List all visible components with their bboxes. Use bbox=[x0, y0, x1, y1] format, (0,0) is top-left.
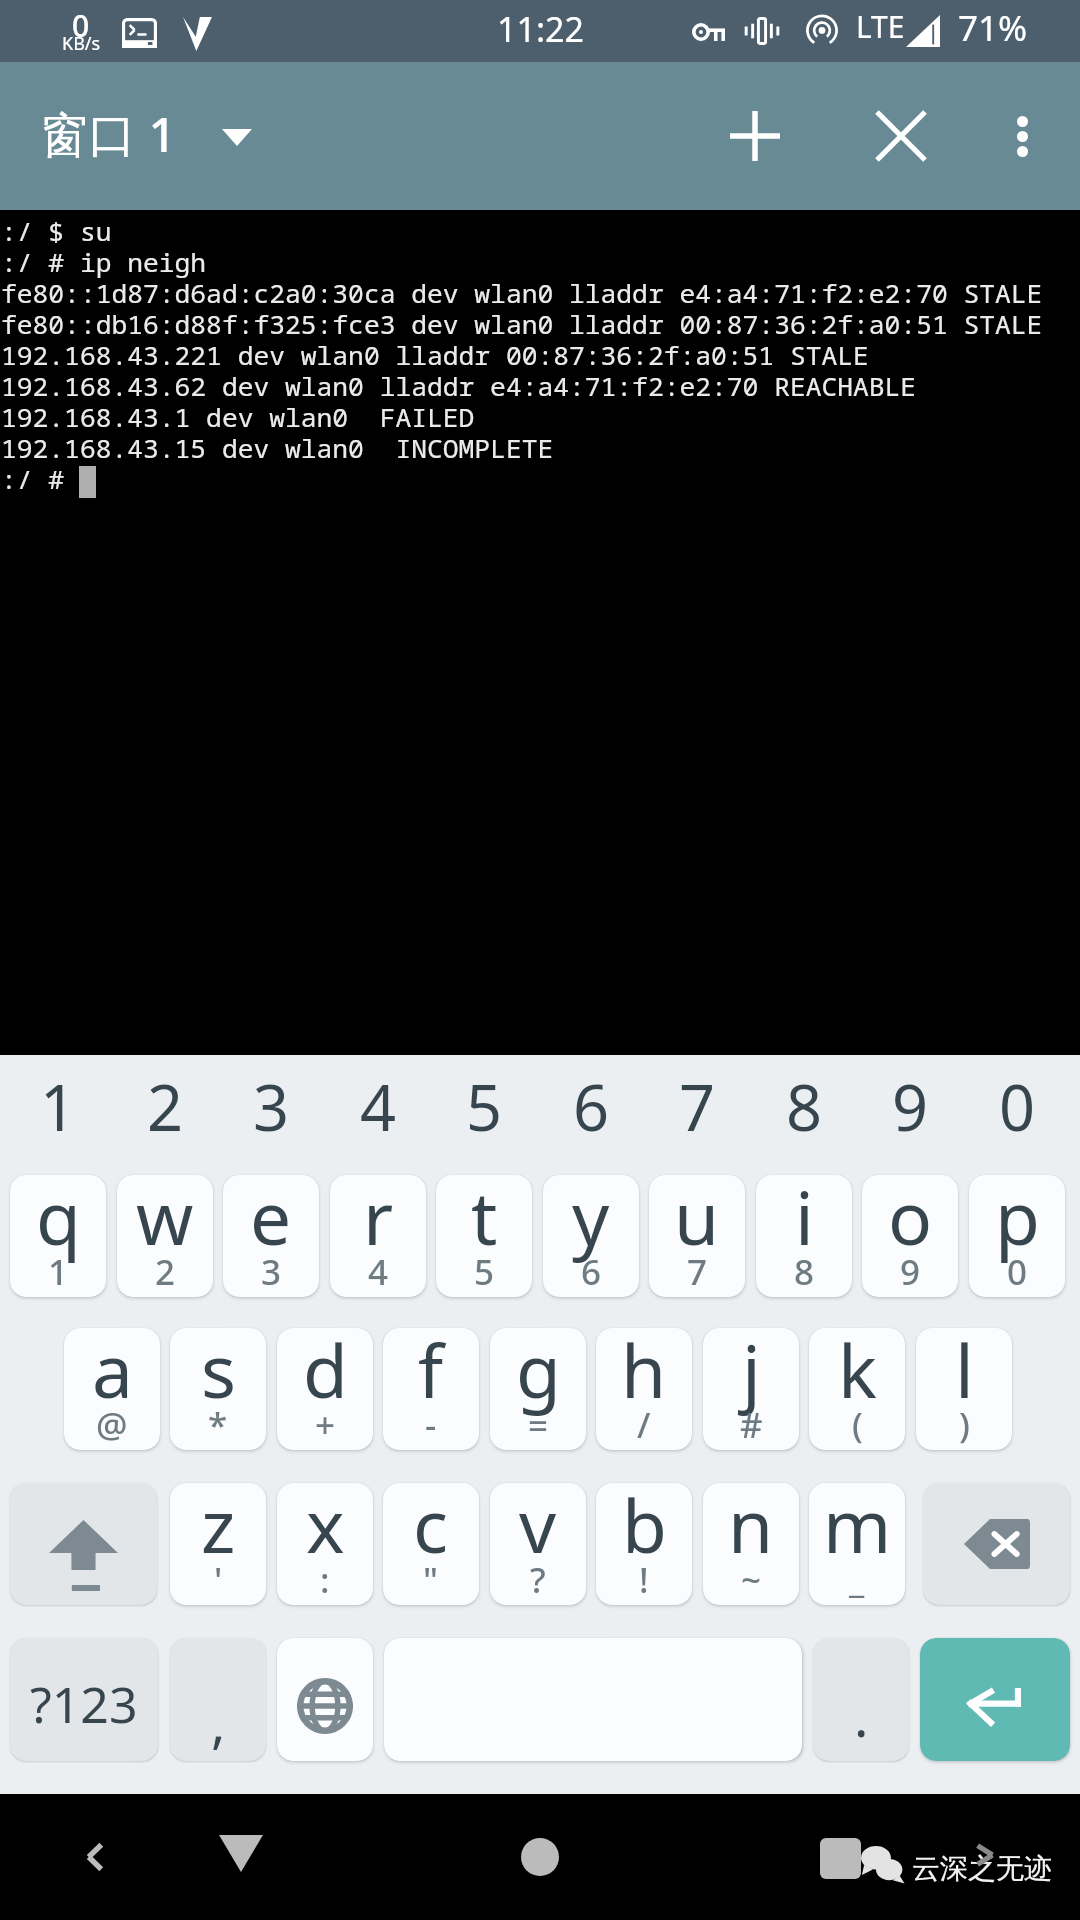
button[interactable]: f bbox=[383, 1328, 479, 1450]
button[interactable]: Close window bbox=[838, 76, 964, 196]
staticText: b bbox=[622, 1483, 667, 1574]
staticText: 0 bbox=[72, 5, 90, 46]
button[interactable]: m bbox=[809, 1483, 905, 1605]
staticText: fe80::1d87:d6ad:c2a0:30ca dev wlan0 llad… bbox=[1, 275, 1043, 311]
button[interactable]: 6 bbox=[543, 1055, 639, 1175]
staticText: r bbox=[363, 1175, 394, 1266]
staticText: - bbox=[425, 1401, 437, 1449]
button[interactable]: , bbox=[170, 1638, 266, 1761]
staticText: h bbox=[621, 1328, 667, 1419]
button[interactable]: 8 bbox=[756, 1055, 852, 1175]
button[interactable]: 3 bbox=[223, 1055, 319, 1175]
staticText: fe80::db16:d88f:f325:fce3 dev wlan0 llad… bbox=[1, 306, 1043, 342]
button[interactable]: z bbox=[170, 1483, 266, 1605]
button[interactable]: j bbox=[703, 1328, 799, 1450]
button[interactable]: . bbox=[813, 1638, 909, 1761]
button[interactable]: p bbox=[969, 1175, 1065, 1297]
staticText: 8 bbox=[794, 1248, 815, 1296]
staticText: = bbox=[528, 1401, 549, 1449]
button[interactable]: h bbox=[596, 1328, 692, 1450]
staticText: :/ # ip neigh bbox=[1, 244, 207, 280]
button[interactable]: 4 bbox=[330, 1055, 426, 1175]
button[interactable]: b bbox=[596, 1483, 692, 1605]
staticText: 192.168.43.62 dev wlan0 lladdr e4:a4:71:… bbox=[1, 368, 917, 404]
button[interactable]: 2 bbox=[117, 1055, 213, 1175]
staticText: 窗口 1 bbox=[40, 101, 176, 167]
button[interactable]: g bbox=[490, 1328, 586, 1450]
button[interactable]: y bbox=[543, 1175, 639, 1297]
staticText: ( bbox=[852, 1401, 863, 1449]
staticText: d bbox=[303, 1328, 348, 1419]
staticText: f bbox=[418, 1328, 444, 1419]
staticText: : bbox=[320, 1556, 330, 1604]
staticText: 192.168.43.15 dev wlan0 INCOMPLETE bbox=[1, 430, 554, 466]
staticText: y bbox=[572, 1175, 610, 1266]
button[interactable]: 5 bbox=[436, 1055, 532, 1175]
staticText: l bbox=[955, 1328, 974, 1419]
button[interactable]: x bbox=[277, 1483, 373, 1605]
staticText: . bbox=[854, 1679, 869, 1753]
button[interactable]: Shift bbox=[10, 1483, 157, 1605]
staticText: w bbox=[136, 1175, 194, 1266]
button[interactable]: a bbox=[64, 1328, 160, 1450]
button[interactable]: r bbox=[330, 1175, 426, 1297]
button[interactable]: Recents bbox=[775, 1794, 905, 1920]
button[interactable]: Hide keyboard bbox=[176, 1794, 306, 1920]
staticText: 7 bbox=[687, 1248, 708, 1296]
staticText: 8 bbox=[786, 1064, 823, 1150]
staticText: 6 bbox=[581, 1248, 602, 1296]
staticText: 4 bbox=[368, 1248, 389, 1296]
button[interactable]: 0 bbox=[969, 1055, 1065, 1175]
staticText: + bbox=[315, 1401, 336, 1449]
staticText: 9 bbox=[892, 1064, 929, 1150]
button[interactable]: d bbox=[277, 1328, 373, 1450]
staticText: o bbox=[888, 1175, 933, 1266]
staticText: 2 bbox=[155, 1248, 176, 1296]
staticText: 192.168.43.1 dev wlan0 FAILED bbox=[1, 399, 475, 435]
button[interactable]: Enter bbox=[920, 1638, 1070, 1761]
button[interactable]: l bbox=[916, 1328, 1012, 1450]
staticText: c bbox=[413, 1483, 449, 1574]
button[interactable]: w bbox=[117, 1175, 213, 1297]
button[interactable]: Change language bbox=[277, 1638, 373, 1761]
staticText: LTE bbox=[856, 6, 905, 47]
button[interactable]: Back bbox=[30, 1794, 160, 1920]
button[interactable]: 窗口 1 bbox=[0, 79, 280, 193]
button[interactable]: c bbox=[383, 1483, 479, 1605]
staticText: j bbox=[742, 1328, 761, 1419]
staticText: z bbox=[201, 1483, 236, 1574]
button[interactable]: k bbox=[809, 1328, 905, 1450]
button[interactable]: t bbox=[436, 1175, 532, 1297]
staticText: ! bbox=[639, 1556, 649, 1604]
button[interactable]: s bbox=[170, 1328, 266, 1450]
staticText: 3 bbox=[253, 1064, 290, 1150]
button[interactable]: Home bbox=[475, 1794, 605, 1920]
staticText: :/ $ su bbox=[1, 213, 112, 249]
staticText: " bbox=[423, 1556, 439, 1604]
button[interactable]: New window bbox=[672, 76, 838, 196]
staticText: n bbox=[728, 1483, 774, 1574]
button[interactable]: u bbox=[649, 1175, 745, 1297]
staticText: i bbox=[795, 1175, 814, 1266]
button[interactable]: n bbox=[703, 1483, 799, 1605]
staticText: ? bbox=[530, 1556, 546, 1604]
staticText: 0 bbox=[1007, 1248, 1028, 1296]
staticText: q bbox=[36, 1175, 81, 1266]
staticText: m bbox=[823, 1483, 892, 1574]
button[interactable]: 1 bbox=[10, 1055, 106, 1175]
button[interactable]: Delete bbox=[923, 1483, 1070, 1605]
button[interactable]: i bbox=[756, 1175, 852, 1297]
button[interactable]: 9 bbox=[862, 1055, 958, 1175]
button[interactable]: v bbox=[490, 1483, 586, 1605]
staticText: v bbox=[519, 1483, 557, 1574]
staticText: KB/s bbox=[62, 31, 101, 56]
button[interactable]: ?123 bbox=[10, 1638, 158, 1761]
button[interactable]: o bbox=[862, 1175, 958, 1297]
button[interactable]: q bbox=[10, 1175, 106, 1297]
staticText: 192.168.43.221 dev wlan0 lladdr 00:87:36… bbox=[1, 337, 869, 373]
button[interactable]: 7 bbox=[649, 1055, 745, 1175]
staticText: ?123 bbox=[30, 1670, 138, 1738]
button[interactable]: e bbox=[223, 1175, 319, 1297]
button[interactable]: More options bbox=[964, 76, 1080, 196]
